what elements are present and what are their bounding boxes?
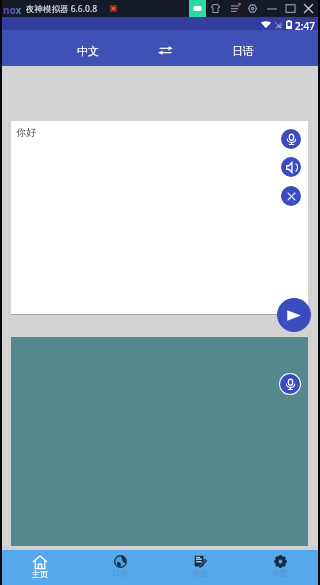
- staticText: 中文: [77, 44, 99, 58]
- staticText: 夜神模拟器 6.6.0.8: [26, 3, 97, 15]
- staticText: 口语: [112, 568, 128, 578]
- button[interactable]: Themes: [211, 4, 220, 13]
- staticText: 设置: [272, 568, 288, 578]
- button[interactable]: 日语: [191, 30, 320, 66]
- button[interactable]: 设置: [240, 550, 320, 585]
- button[interactable]: Translate: [277, 298, 311, 332]
- staticText: 主页: [32, 569, 48, 579]
- button[interactable]: Speak aloud: [281, 157, 301, 177]
- button[interactable]: Voice input: [280, 374, 300, 394]
- button[interactable]: 口语: [80, 550, 160, 585]
- button[interactable]: Clear text: [281, 186, 301, 206]
- button[interactable]: Menu: [231, 4, 240, 13]
- button[interactable]: Swap languages: [139, 30, 191, 66]
- staticText: 2:47: [295, 19, 315, 32]
- staticText: nox: [3, 3, 22, 17]
- button[interactable]: Minimise: [267, 4, 277, 13]
- button[interactable]: 主页: [0, 550, 80, 585]
- staticText: 历史: [192, 568, 208, 578]
- button[interactable]: 历史: [160, 550, 240, 585]
- button[interactable]: 中文: [0, 30, 139, 66]
- button[interactable]: App shortcut: [189, 0, 206, 17]
- button[interactable]: Maximise: [286, 4, 295, 13]
- button[interactable]: Close: [304, 4, 313, 13]
- button[interactable]: Voice input: [281, 129, 301, 149]
- staticText: 你好: [16, 126, 36, 139]
- staticText: 日语: [232, 44, 254, 58]
- button[interactable]: Settings: [248, 4, 257, 13]
